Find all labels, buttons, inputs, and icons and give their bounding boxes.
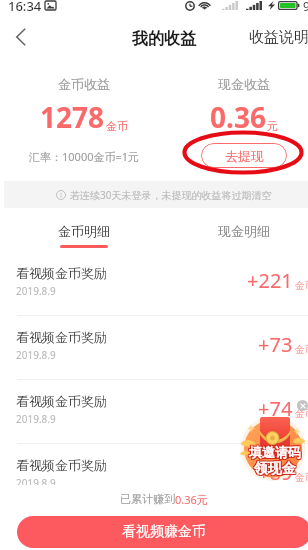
staticText: 领现金 bbox=[254, 459, 296, 477]
button[interactable]: 看视频赚金币 bbox=[17, 516, 308, 548]
staticText: 填邀请码 bbox=[248, 444, 300, 460]
staticText: 填邀请码 bbox=[250, 445, 302, 461]
staticText: 看视频金币奖励 bbox=[16, 457, 107, 473]
staticText: 看视频金币奖励 bbox=[16, 265, 107, 281]
staticText: 看视频赚金币 bbox=[122, 523, 206, 541]
staticText: 1278 bbox=[40, 98, 105, 136]
staticText: 金币 bbox=[295, 343, 308, 356]
button[interactable]: 金币明细 bbox=[4, 208, 164, 252]
staticText: +74 bbox=[258, 395, 293, 422]
staticText: 领现金 bbox=[255, 459, 297, 477]
staticText: 领现金 bbox=[253, 461, 295, 479]
staticText: 金币 bbox=[295, 471, 308, 484]
button[interactable]: Invite code red packet bbox=[236, 408, 308, 484]
staticText: 现金明细 bbox=[218, 223, 270, 239]
staticText: 95% bbox=[303, 0, 308, 14]
button[interactable]: 现金明细 bbox=[164, 208, 308, 252]
staticText: 填邀请码 bbox=[250, 443, 302, 459]
staticText: 填邀请码 bbox=[248, 445, 300, 461]
staticText: 领现金 bbox=[255, 460, 297, 478]
staticText: 填邀请码 bbox=[249, 445, 301, 461]
staticText: 现金收益 bbox=[218, 76, 270, 92]
staticText: 汇率：10000金币=1元 bbox=[29, 149, 140, 164]
button[interactable]: 看视频金币奖励 bbox=[4, 380, 308, 444]
button[interactable]: 看视频金币奖励 bbox=[4, 316, 308, 380]
staticText: +73 bbox=[258, 331, 293, 358]
staticText: 填邀请码 bbox=[248, 443, 300, 459]
staticText: 2019.8.9 bbox=[16, 284, 56, 298]
staticText: 领现金 bbox=[253, 459, 295, 477]
staticText: 元 bbox=[267, 119, 278, 133]
staticText: 我的收益 bbox=[132, 29, 196, 49]
staticText: 收益说明 bbox=[249, 28, 308, 47]
staticText: 领现金 bbox=[254, 460, 296, 478]
staticText: 填邀请码 bbox=[249, 444, 301, 460]
staticText: 领现金 bbox=[253, 460, 295, 478]
button[interactable]: 收益说明 bbox=[245, 22, 308, 53]
button[interactable]: 看视频金币奖励 bbox=[4, 444, 308, 508]
staticText: 金币明细 bbox=[58, 223, 110, 239]
staticText: 0.36元 bbox=[175, 492, 208, 507]
button[interactable]: Close bbox=[297, 400, 308, 411]
staticText: 填邀请码 bbox=[249, 443, 301, 459]
staticText: 2019.8.9 bbox=[16, 348, 56, 362]
staticText: 金币 bbox=[295, 407, 308, 420]
button[interactable]: Back bbox=[3, 20, 39, 54]
button[interactable]: 去提现 bbox=[201, 143, 287, 168]
staticText: 去提现 bbox=[225, 148, 264, 164]
staticText: 金币 bbox=[295, 279, 308, 292]
staticText: +221 bbox=[247, 267, 293, 294]
staticText: 2019.8.9 bbox=[16, 476, 56, 490]
button[interactable]: 看视频金币奖励 bbox=[4, 252, 308, 316]
staticText: 16:34 bbox=[8, 0, 42, 15]
staticText: 2019.8.9 bbox=[16, 412, 56, 426]
staticText: 金币收益 bbox=[58, 76, 110, 92]
staticText: 金币 bbox=[106, 119, 128, 133]
staticText: +89 bbox=[258, 459, 293, 486]
staticText: 已累计赚到 bbox=[120, 492, 175, 506]
staticText: 领现金 bbox=[255, 461, 297, 479]
staticText: 看视频金币奖励 bbox=[16, 329, 107, 345]
staticText: 0.36 bbox=[210, 98, 266, 136]
staticText: 若连续30天未登录，未提现的收益将过期清空 bbox=[70, 188, 272, 202]
staticText: 填邀请码 bbox=[250, 444, 302, 460]
staticText: 看视频金币奖励 bbox=[16, 393, 107, 409]
staticText: 领现金 bbox=[254, 461, 296, 479]
